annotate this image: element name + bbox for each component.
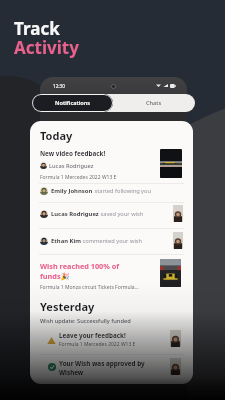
staticText: 12:30 [53,83,65,89]
staticText: Notifications [55,99,91,107]
button[interactable]: Wish reached 100% of funds🎉 [30,259,193,291]
staticText: Ethan Kim [51,237,81,245]
staticText: Activity [14,36,79,59]
staticText: commented your wish [81,237,143,245]
button[interactable]: Your Wish was approved by Wishew [30,355,193,383]
staticText: Today [40,128,73,143]
staticText: Yesterday [40,299,95,314]
staticText: Formula 1 Monza circuit Tickets Formula… [40,284,139,291]
staticText: Emily Johnson [51,187,93,195]
staticText: Formula 1 Mercedes 2022 W13 E [59,341,136,348]
button[interactable]: Notifications [32,94,113,112]
button[interactable]: Lucas Rodriguez [30,202,193,225]
staticText: Leave your feedback! [59,331,126,340]
staticText: Lucas Rodriguez [51,210,99,218]
staticText: started following you [93,187,151,195]
staticText: New video feedback! [40,149,106,158]
button[interactable]: Ethan Kim [30,229,193,252]
staticText: Wish reached 100% of funds🎉 [40,261,120,281]
staticText: Formula 1 Mercedes 2022 W13 E [40,174,117,181]
button[interactable]: Leave your feedback! [30,329,193,353]
button[interactable]: New video feedback! [30,147,193,182]
staticText: Lucas Rodriguez [49,162,94,170]
staticText: Chats [146,99,162,107]
button[interactable]: Chats [113,94,195,112]
button[interactable]: Emily Johnson [30,179,193,202]
staticText: Your Wish was approved by Wishew [59,359,145,377]
staticText: Wish update: Successfully funded [40,317,131,325]
staticText: Track [14,17,60,40]
staticText: saved your wish [99,210,144,218]
